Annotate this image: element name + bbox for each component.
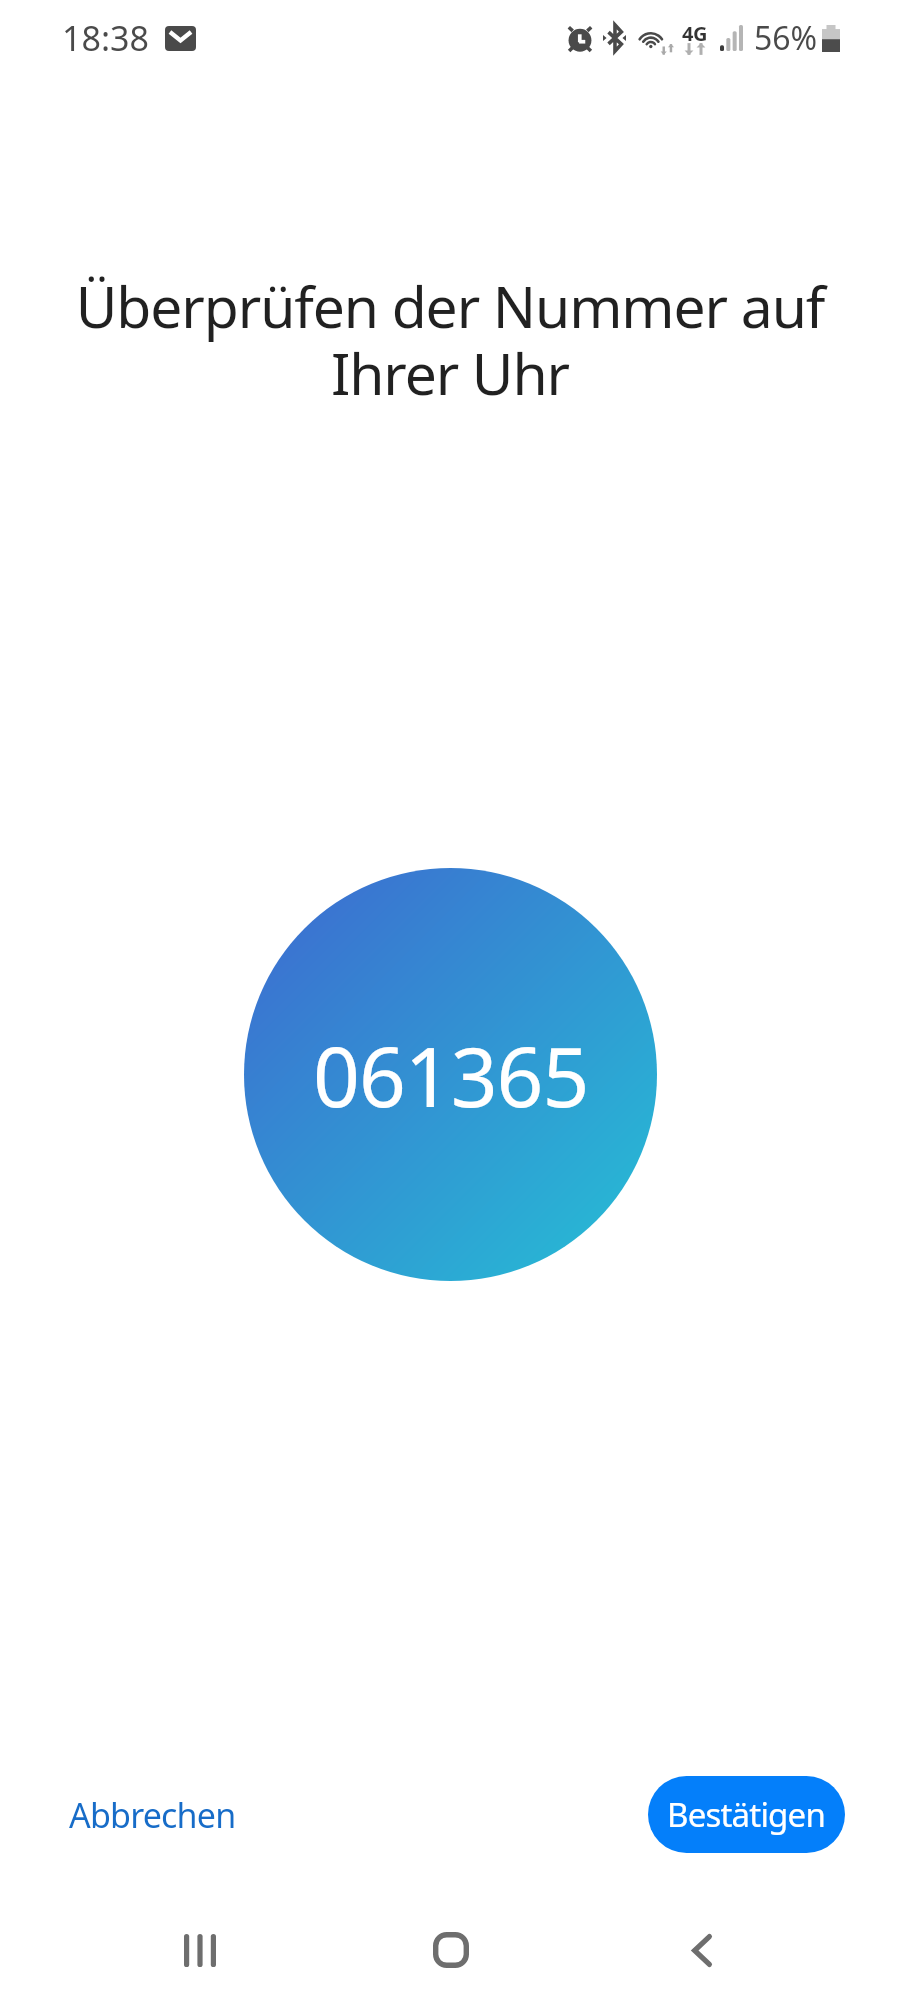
staticText: 061365 bbox=[313, 1019, 589, 1131]
staticText: Überprüfen der Nummer auf Ihrer Uhr bbox=[28, 267, 872, 411]
button[interactable]: Back bbox=[652, 1900, 752, 2000]
staticText: 18:38 bbox=[62, 15, 149, 61]
staticText: Bestätigen bbox=[667, 1792, 826, 1837]
button[interactable]: Home bbox=[401, 1900, 501, 2000]
staticText: 4G bbox=[682, 20, 708, 47]
button[interactable]: Bestätigen bbox=[648, 1776, 845, 1853]
staticText: Abbrechen bbox=[69, 1792, 236, 1838]
button[interactable]: Recents bbox=[150, 1900, 250, 2000]
staticText: 56% bbox=[754, 16, 818, 60]
button[interactable]: Abbrechen bbox=[55, 1776, 250, 1853]
